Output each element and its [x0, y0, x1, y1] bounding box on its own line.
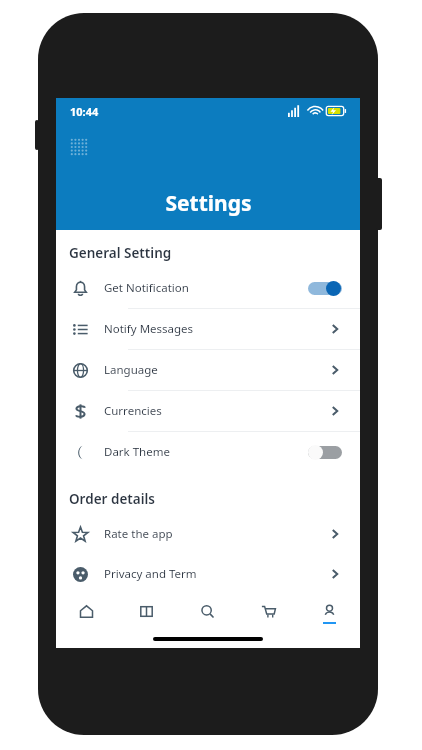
staticText: Settings: [165, 189, 252, 218]
button[interactable]: Language: [56, 350, 360, 391]
staticText: 10:44: [70, 104, 99, 119]
button[interactable]: Get Notification toggle, on: [308, 281, 342, 296]
button[interactable]: Search: [177, 598, 238, 630]
staticText: Order details: [69, 490, 155, 508]
button[interactable]: Rate the app: [56, 514, 360, 554]
staticText: Dark Theme: [104, 444, 170, 460]
button[interactable]: Dark Theme toggle, off: [308, 445, 342, 460]
staticText: Privacy and Term: [104, 566, 197, 582]
staticText: Currencies: [104, 403, 162, 419]
other: Menu: [70, 138, 88, 156]
button[interactable]: Get Notification: [56, 268, 360, 309]
button[interactable]: Home: [56, 598, 116, 630]
button[interactable]: Cart: [238, 598, 299, 630]
button[interactable]: Privacy and Term: [56, 554, 360, 594]
button[interactable]: Dark Theme: [56, 432, 360, 472]
button[interactable]: Profile: [299, 598, 360, 630]
staticText: General Setting: [69, 244, 172, 262]
button[interactable]: Library: [116, 598, 177, 630]
button[interactable]: Currencies: [56, 391, 360, 432]
staticText: Language: [104, 362, 158, 378]
button[interactable]: Notify Messages: [56, 309, 360, 350]
staticText: Rate the app: [104, 526, 173, 542]
staticText: Notify Messages: [104, 321, 194, 337]
staticText: Get Notification: [104, 280, 189, 296]
